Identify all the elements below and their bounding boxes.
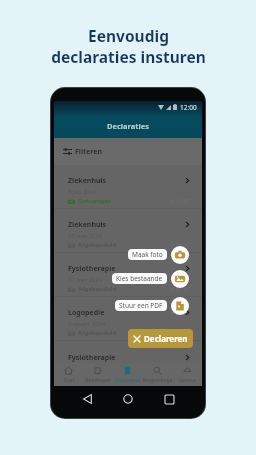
- button[interactable]: Fysiotherapie: [54, 253, 202, 297]
- staticText: Kies bestaande: [116, 274, 163, 283]
- button[interactable]: Ziekenhuis: [54, 209, 202, 253]
- button[interactable]: Recents: [161, 391, 177, 407]
- staticText: Stuur een PDF: [119, 301, 163, 310]
- staticText: Maak foto: [132, 250, 163, 259]
- staticText: Logopedie: [68, 308, 105, 318]
- button[interactable]: Betalingen: [83, 363, 112, 386]
- button[interactable]: Kies bestaande: [171, 270, 189, 288]
- staticText: Afgehandeld: [78, 241, 117, 249]
- staticText: Eenvoudig: [88, 25, 169, 46]
- staticText: Vergoedingen: [142, 377, 172, 384]
- staticText: € 42,00: [170, 285, 191, 293]
- button[interactable]: Declareren: [128, 329, 193, 348]
- button[interactable]: Declaraties: [112, 363, 142, 386]
- staticText: Declaraties: [114, 377, 141, 384]
- staticText: Fysiotherapie: [68, 353, 116, 363]
- button[interactable]: Filteren: [54, 138, 202, 165]
- button[interactable]: Kies bestaande: [112, 273, 167, 284]
- button[interactable]: Home: [120, 391, 136, 407]
- staticText: Afgehandeld: [78, 329, 117, 337]
- button[interactable]: Logopedie: [54, 297, 202, 341]
- button[interactable]: Ziekenhuis: [54, 165, 202, 209]
- button[interactable]: Service: [172, 363, 202, 386]
- button[interactable]: Fysiotherapie: [54, 341, 202, 363]
- staticText: Afgehandeld: [78, 285, 117, 293]
- staticText: declaraties insturen: [51, 46, 206, 67]
- button[interactable]: Stuur een PDF: [171, 297, 189, 315]
- button[interactable]: Back: [79, 391, 95, 407]
- staticText: Declareren: [144, 333, 188, 344]
- button[interactable]: Maak foto: [171, 246, 189, 264]
- staticText: Ziekenhuis: [68, 176, 107, 186]
- staticText: Declaraties: [107, 121, 149, 131]
- staticText: Ziekenhuis: [68, 220, 107, 230]
- staticText: Start: [63, 377, 75, 384]
- staticText: Betalingen: [85, 377, 111, 384]
- staticText: Filteren: [75, 147, 102, 157]
- staticText: Service: [179, 377, 196, 384]
- staticText: 1 maart 2024: [68, 320, 106, 328]
- button[interactable]: Stuur een PDF: [115, 300, 167, 311]
- button[interactable]: Start: [54, 363, 83, 386]
- staticText: 5 juli 2024: [68, 188, 97, 196]
- staticText: € 75,60: [170, 241, 191, 249]
- staticText: 11 mei 2024: [68, 276, 103, 284]
- staticText: 25 mei 2024: [68, 232, 103, 240]
- button[interactable]: Maak foto: [128, 249, 167, 260]
- button[interactable]: Vergoedingen: [142, 363, 172, 386]
- staticText: Ontvangen: [78, 197, 112, 205]
- staticText: 12:00: [180, 103, 197, 112]
- staticText: Fysiotherapie: [68, 264, 116, 274]
